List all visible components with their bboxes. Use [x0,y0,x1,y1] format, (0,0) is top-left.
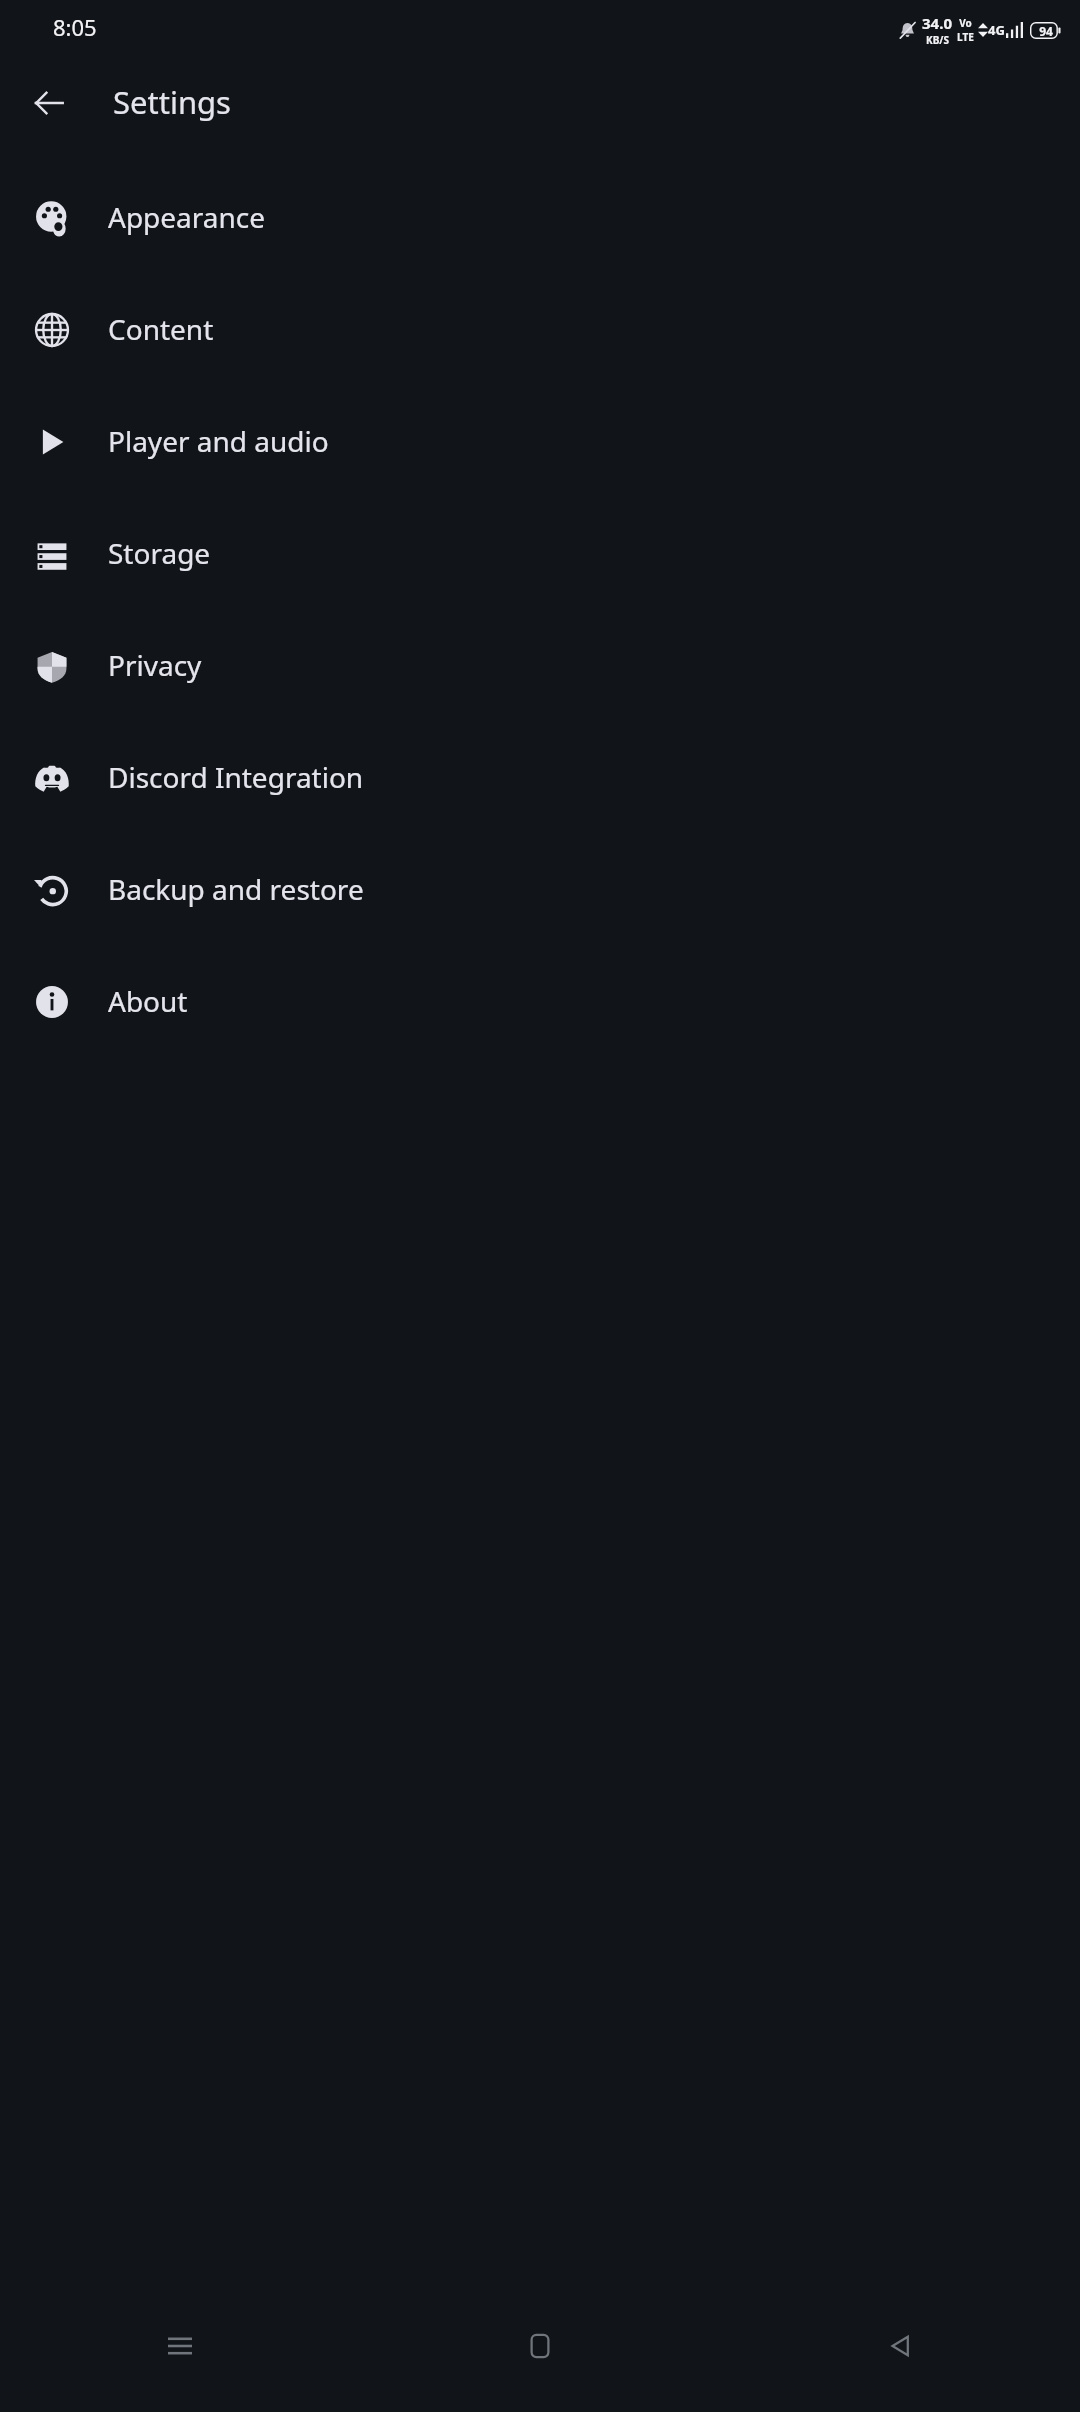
button[interactable]: About [0,945,1080,1057]
staticText: Discord Integration [108,758,364,796]
staticText: 94 [1039,23,1053,39]
button[interactable]: Player and audio [0,385,1080,497]
staticText: Vo [959,16,972,30]
button[interactable]: Storage [0,497,1080,609]
staticText: 34.0 [922,13,952,33]
button[interactable]: Home [360,2300,720,2412]
button[interactable]: Back [720,2300,1080,2412]
staticText: Backup and restore [108,870,364,908]
button[interactable]: Recents [0,2300,360,2412]
staticText: LTE [957,30,974,44]
staticText: KB/S [926,33,949,47]
button[interactable]: Privacy [0,609,1080,721]
staticText: 4G [988,21,1005,39]
button[interactable]: Content [0,273,1080,385]
button[interactable]: Back [26,80,71,125]
staticText: Content [108,310,214,348]
staticText: About [108,982,188,1020]
staticText: 8:05 [53,12,97,42]
staticText: Storage [108,534,211,572]
staticText: Settings [113,81,231,123]
button[interactable]: Backup and restore [0,833,1080,945]
button[interactable]: Discord Integration [0,721,1080,833]
button[interactable]: Appearance [0,161,1080,273]
staticText: Privacy [108,646,202,684]
staticText: Player and audio [108,422,329,460]
staticText: Appearance [108,198,266,236]
